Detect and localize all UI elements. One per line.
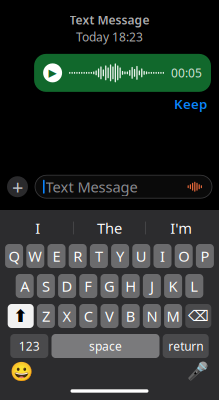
staticText: V — [105, 306, 114, 326]
staticText: A — [20, 276, 29, 296]
staticText: E — [52, 246, 60, 266]
staticText: Q — [9, 246, 20, 266]
button[interactable]: K — [164, 274, 182, 298]
button[interactable]: U — [132, 244, 150, 268]
staticText: ⬆ — [13, 306, 28, 326]
button[interactable]: R — [69, 244, 87, 268]
staticText: K — [169, 276, 178, 296]
staticText: Keep — [174, 95, 207, 113]
staticText: 🎤 — [187, 361, 209, 381]
staticText: U — [136, 246, 147, 266]
staticText: T — [95, 246, 103, 266]
button[interactable]: Y — [111, 244, 129, 268]
staticText: 123 — [19, 338, 40, 354]
staticText: S — [42, 276, 50, 296]
staticText: X — [63, 306, 72, 326]
button[interactable]: F — [79, 274, 97, 298]
staticText: B — [126, 306, 136, 326]
staticText: I — [160, 246, 165, 266]
button[interactable]: E — [47, 244, 65, 268]
staticText: D — [62, 276, 73, 296]
button[interactable]: H — [122, 274, 140, 298]
staticText: + — [12, 173, 23, 200]
button[interactable]: Q — [5, 244, 23, 268]
button[interactable]: return — [163, 334, 209, 358]
staticText: Y — [116, 246, 124, 266]
button[interactable]: Emoji keyboard — [8, 361, 34, 381]
staticText: I — [35, 218, 40, 238]
button[interactable]: O — [175, 244, 193, 268]
staticText: Z — [42, 306, 50, 326]
staticText: C — [84, 306, 93, 326]
button[interactable]: T — [90, 244, 108, 268]
button[interactable]: Delete — [185, 304, 211, 328]
staticText: Text Message — [69, 12, 149, 28]
staticText: 00:05 — [171, 65, 202, 81]
button[interactable]: The — [74, 214, 145, 242]
staticText: ⌫ — [188, 308, 209, 324]
button[interactable]: Dictate — [185, 361, 211, 381]
button[interactable]: W — [26, 244, 44, 268]
button[interactable]: B — [122, 304, 140, 328]
staticText: G — [104, 276, 115, 296]
staticText: R — [73, 246, 82, 266]
button[interactable]: A — [16, 274, 34, 298]
staticText: return — [168, 338, 203, 354]
button[interactable]: V — [100, 304, 118, 328]
staticText: H — [125, 276, 136, 296]
staticText: M — [167, 306, 180, 326]
staticText: Today 18:23 — [76, 29, 143, 45]
staticText: F — [84, 276, 92, 296]
staticText: 😀 — [9, 361, 32, 382]
staticText: O — [178, 246, 189, 266]
staticText: I'm — [170, 218, 192, 238]
button[interactable]: L — [185, 274, 203, 298]
staticText: J — [150, 276, 154, 296]
button[interactable]: X — [58, 304, 76, 328]
staticText: W — [28, 246, 42, 266]
button[interactable]: Z — [37, 304, 55, 328]
button[interactable]: D — [58, 274, 76, 298]
button[interactable]: Add attachment — [7, 173, 28, 200]
button[interactable]: P — [196, 244, 214, 268]
button[interactable]: 123 — [10, 334, 48, 358]
button[interactable]: S — [37, 274, 55, 298]
button[interactable]: J — [143, 274, 161, 298]
staticText: space — [89, 338, 122, 354]
button[interactable]: I — [2, 214, 73, 242]
staticText: L — [190, 276, 198, 296]
button[interactable]: M — [164, 304, 182, 328]
button[interactable]: Keep — [171, 94, 210, 114]
button[interactable]: Shift — [8, 304, 34, 328]
staticText: ▶ — [49, 67, 57, 79]
staticText: N — [146, 306, 157, 326]
staticText: Text Message — [46, 177, 138, 196]
button[interactable]: space — [51, 334, 159, 358]
button[interactable]: N — [143, 304, 161, 328]
staticText: P — [200, 246, 209, 266]
button[interactable]: G — [100, 274, 118, 298]
button[interactable]: I — [153, 244, 171, 268]
staticText: The — [97, 218, 122, 238]
button[interactable]: C — [79, 304, 97, 328]
button[interactable]: I'm — [146, 214, 217, 242]
button[interactable]: Text Message — [35, 175, 212, 198]
